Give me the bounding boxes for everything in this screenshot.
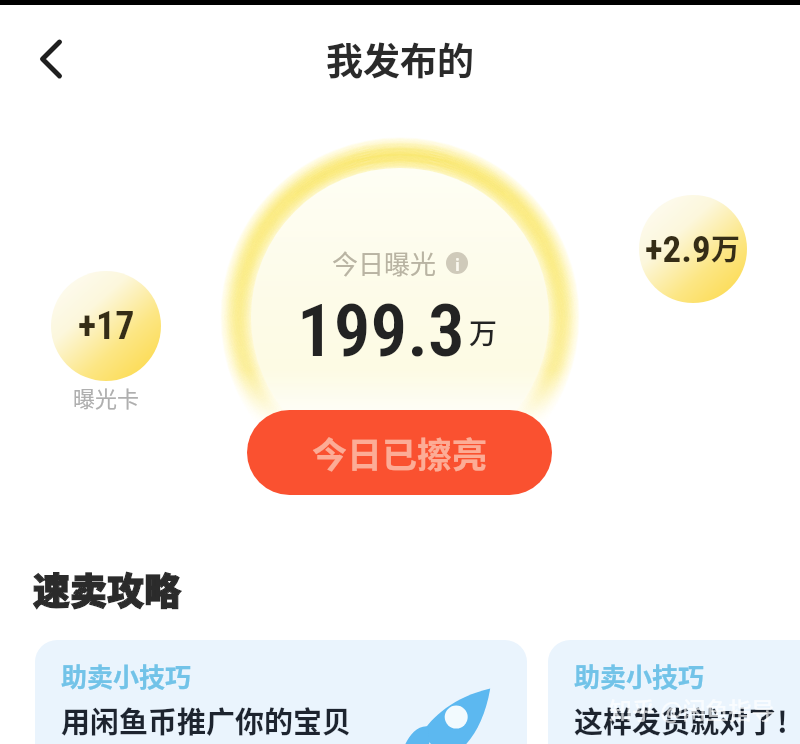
staticText: 曝光卡 — [73, 381, 140, 413]
staticText: +17 — [78, 304, 135, 349]
staticText: +2.9 — [645, 228, 711, 271]
staticText: 199.3 — [297, 288, 465, 374]
button[interactable]: Back — [25, 30, 77, 82]
staticText: 这样发货就对了! — [574, 699, 788, 741]
staticText: 助卖小技巧 — [61, 657, 192, 695]
staticText: 速卖攻略 — [33, 562, 181, 616]
button[interactable]: +2.9 — [639, 195, 747, 303]
staticText: 助卖小技巧 — [574, 657, 705, 695]
button[interactable]: 助卖小技巧 — [548, 640, 800, 744]
staticText: 知乎 @闲鱼指导 — [609, 692, 775, 725]
staticText: i — [455, 252, 460, 274]
staticText: 我发布的 — [326, 32, 474, 86]
button[interactable]: 今日已擦亮 — [247, 410, 552, 495]
button[interactable]: +17 — [51, 271, 161, 381]
staticText: 万 — [469, 312, 498, 353]
staticText: 速卖攻略 — [33, 562, 181, 616]
staticText: 万 — [711, 226, 741, 268]
staticText: 用闲鱼币推广你的宝贝 — [61, 699, 352, 741]
staticText: 今日曝光 — [332, 244, 437, 282]
button[interactable]: 助卖小技巧 — [35, 640, 527, 744]
staticText: 今日已擦亮 — [312, 427, 488, 478]
